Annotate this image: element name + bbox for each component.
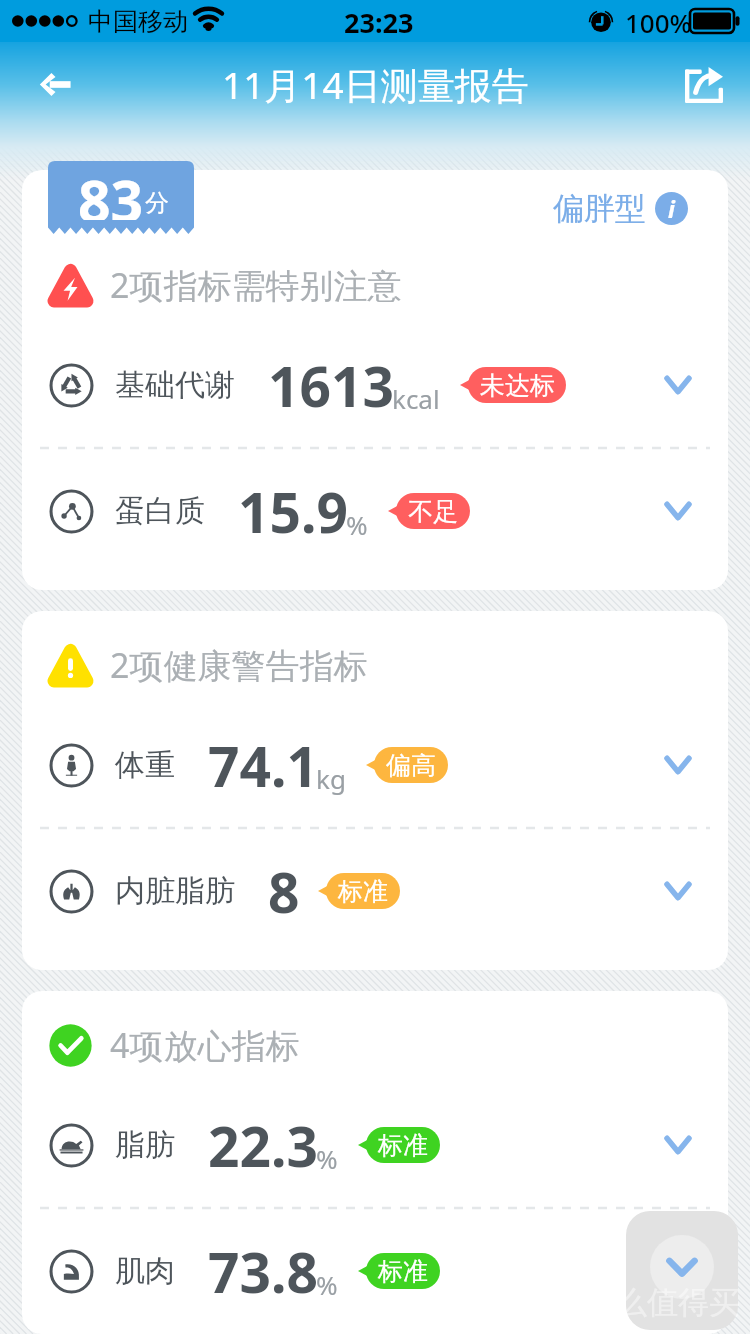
staticText: 脂肪 <box>115 1126 175 1164</box>
staticText: 15.9 <box>238 474 348 549</box>
staticText: 偏高 <box>386 750 436 781</box>
staticText: 分 <box>145 188 169 218</box>
button[interactable]: 基础代谢 <box>22 323 728 447</box>
other: Expand <box>666 753 690 777</box>
staticText: 未达标 <box>480 370 555 401</box>
other: Expand <box>666 1259 690 1283</box>
staticText: 内脏脂肪 <box>115 872 235 910</box>
staticText: 22.3 <box>208 1108 318 1183</box>
staticText: 中国移动 <box>88 6 188 37</box>
staticText: 标准 <box>338 876 388 907</box>
staticText: 11月14日测量报告 <box>222 59 529 110</box>
staticText: i <box>668 193 675 224</box>
staticText: 1613 <box>268 348 394 423</box>
staticText: 100% <box>625 5 692 40</box>
button[interactable]: 脂肪 <box>22 1083 728 1207</box>
button[interactable]: 偏胖型 <box>553 189 688 228</box>
staticText: 肌肉 <box>115 1252 175 1290</box>
staticText: % <box>316 1141 338 1176</box>
staticText: % <box>316 1267 338 1302</box>
staticText: 什么值得买 <box>585 1283 740 1322</box>
staticText: 23:23 <box>344 4 414 41</box>
other: Expand <box>666 373 690 397</box>
button[interactable]: Scroll down <box>626 1211 738 1330</box>
other: Expand <box>666 1133 690 1157</box>
staticText: 83 <box>78 161 144 220</box>
staticText: kg <box>316 761 346 796</box>
button[interactable]: 体重 <box>22 703 728 827</box>
staticText: 4项放心指标 <box>110 1022 300 1068</box>
staticText: 体重 <box>115 746 175 784</box>
staticText: 偏胖型 <box>553 189 646 228</box>
button[interactable]: Share <box>673 53 735 115</box>
staticText: 基础代谢 <box>115 366 235 404</box>
button[interactable]: Back <box>24 53 86 115</box>
staticText: 73.8 <box>208 1234 318 1309</box>
staticText: 不足 <box>408 496 458 527</box>
button[interactable]: 内脏脂肪 <box>22 829 728 953</box>
button[interactable]: 肌肉 <box>22 1209 728 1333</box>
staticText: 74.1 <box>208 728 318 803</box>
other: Expand <box>666 879 690 903</box>
staticText: % <box>346 507 368 542</box>
staticText: kcal <box>392 381 440 416</box>
staticText: 2项指标需特别注意 <box>110 262 402 308</box>
staticText: 蛋白质 <box>115 492 205 530</box>
staticText: 2项健康警告指标 <box>110 642 368 688</box>
other: Expand <box>666 499 690 523</box>
staticText: 8 <box>268 854 300 929</box>
button[interactable]: 蛋白质 <box>22 449 728 573</box>
staticText: 标准 <box>378 1130 428 1161</box>
staticText: 标准 <box>378 1256 428 1287</box>
